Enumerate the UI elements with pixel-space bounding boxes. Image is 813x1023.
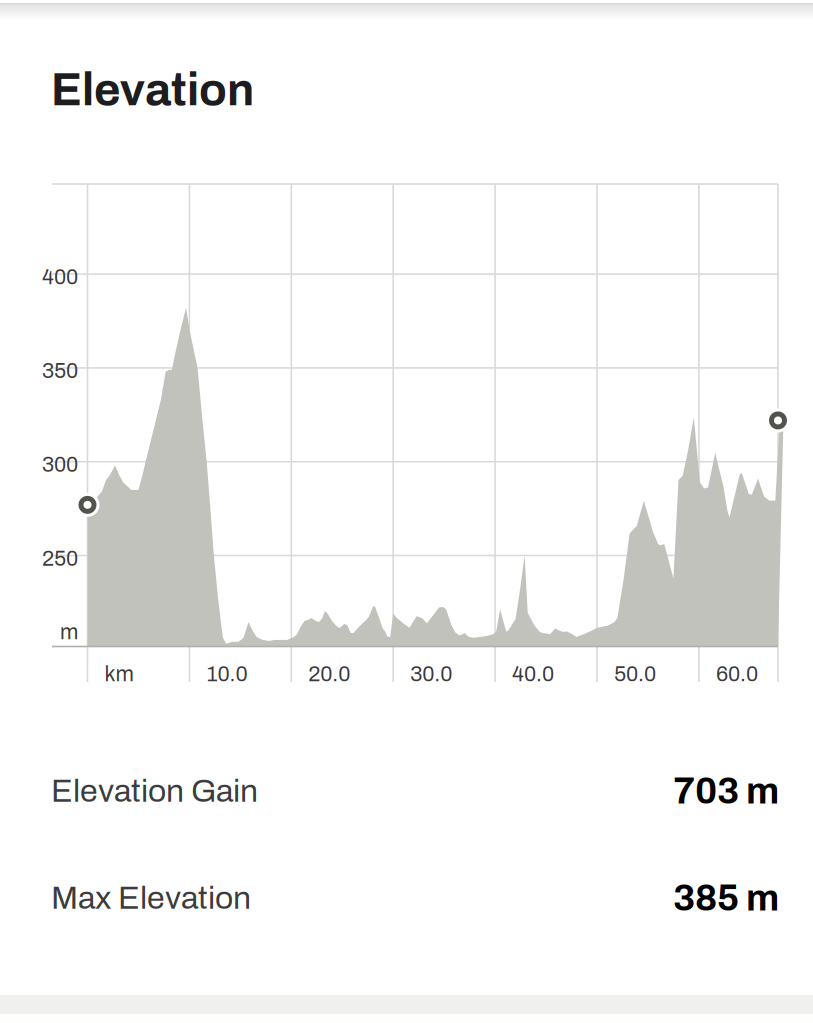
staticText: 10.0 bbox=[206, 662, 247, 686]
staticText: 703 m bbox=[673, 771, 779, 811]
staticText: 400 bbox=[42, 265, 78, 289]
staticText: 300 bbox=[42, 453, 78, 476]
staticText: 30.0 bbox=[410, 662, 452, 686]
staticText: 40.0 bbox=[512, 662, 554, 686]
staticText: 50.0 bbox=[614, 662, 656, 686]
staticText: Elevation bbox=[51, 65, 254, 115]
staticText: 60.0 bbox=[716, 662, 758, 686]
staticText: 385 m bbox=[673, 878, 779, 918]
staticText: 250 bbox=[42, 547, 78, 570]
staticText: km bbox=[104, 662, 133, 686]
staticText: Max Elevation bbox=[51, 881, 251, 915]
staticText: 20.0 bbox=[308, 662, 350, 686]
staticText: 350 bbox=[42, 359, 78, 382]
staticText: m bbox=[60, 620, 78, 644]
staticText: Elevation Gain bbox=[51, 774, 258, 808]
